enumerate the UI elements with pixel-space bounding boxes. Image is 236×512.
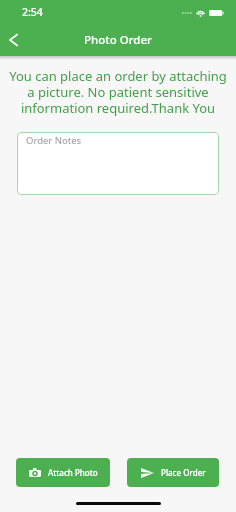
staticText: Attach Photo xyxy=(48,467,98,478)
button[interactable]: Place Order xyxy=(127,458,219,487)
staticText: 2:54 xyxy=(22,5,43,19)
staticText: You can place an order by attaching a pi… xyxy=(4,67,232,116)
staticText: Place Order xyxy=(161,467,206,478)
staticText: Order Notes xyxy=(26,134,82,147)
staticText: Photo Order xyxy=(84,32,152,48)
button[interactable]: Attach Photo xyxy=(16,458,110,487)
button[interactable]: Order Notes xyxy=(17,132,219,195)
button[interactable]: Back xyxy=(0,27,26,53)
